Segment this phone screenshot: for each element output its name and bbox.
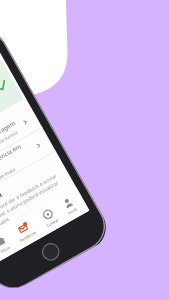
button[interactable]: Início: [0, 232, 13, 257]
button[interactable]: Avaliação de aprendizagem: [0, 104, 42, 180]
staticText: Feedback: [0, 190, 4, 213]
staticText: Avaliação de aprendizagem: [0, 119, 17, 164]
staticText: Início: [0, 245, 11, 254]
button[interactable]: Pendente: [11, 217, 39, 246]
staticText: Relato de experiência em sala de aula: [0, 138, 33, 191]
button[interactable]: Entrega realizada: [0, 60, 24, 150]
staticText: Enviado em 12 de maio: [0, 166, 17, 199]
staticText: Pendente: [18, 230, 37, 243]
button[interactable]: Relato de experiência em sala de aula: [0, 128, 55, 203]
staticText: Coletar: [45, 217, 60, 228]
staticText: Perfil: [67, 207, 78, 216]
other: Home: [38, 239, 63, 264]
button[interactable]: Perfil: [59, 194, 80, 218]
staticText: Quando você der o feedback e enviar disp…: [0, 171, 67, 234]
staticText: Veja os resultados de sua turma: [0, 129, 20, 172]
button[interactable]: Coletar: [37, 204, 62, 230]
